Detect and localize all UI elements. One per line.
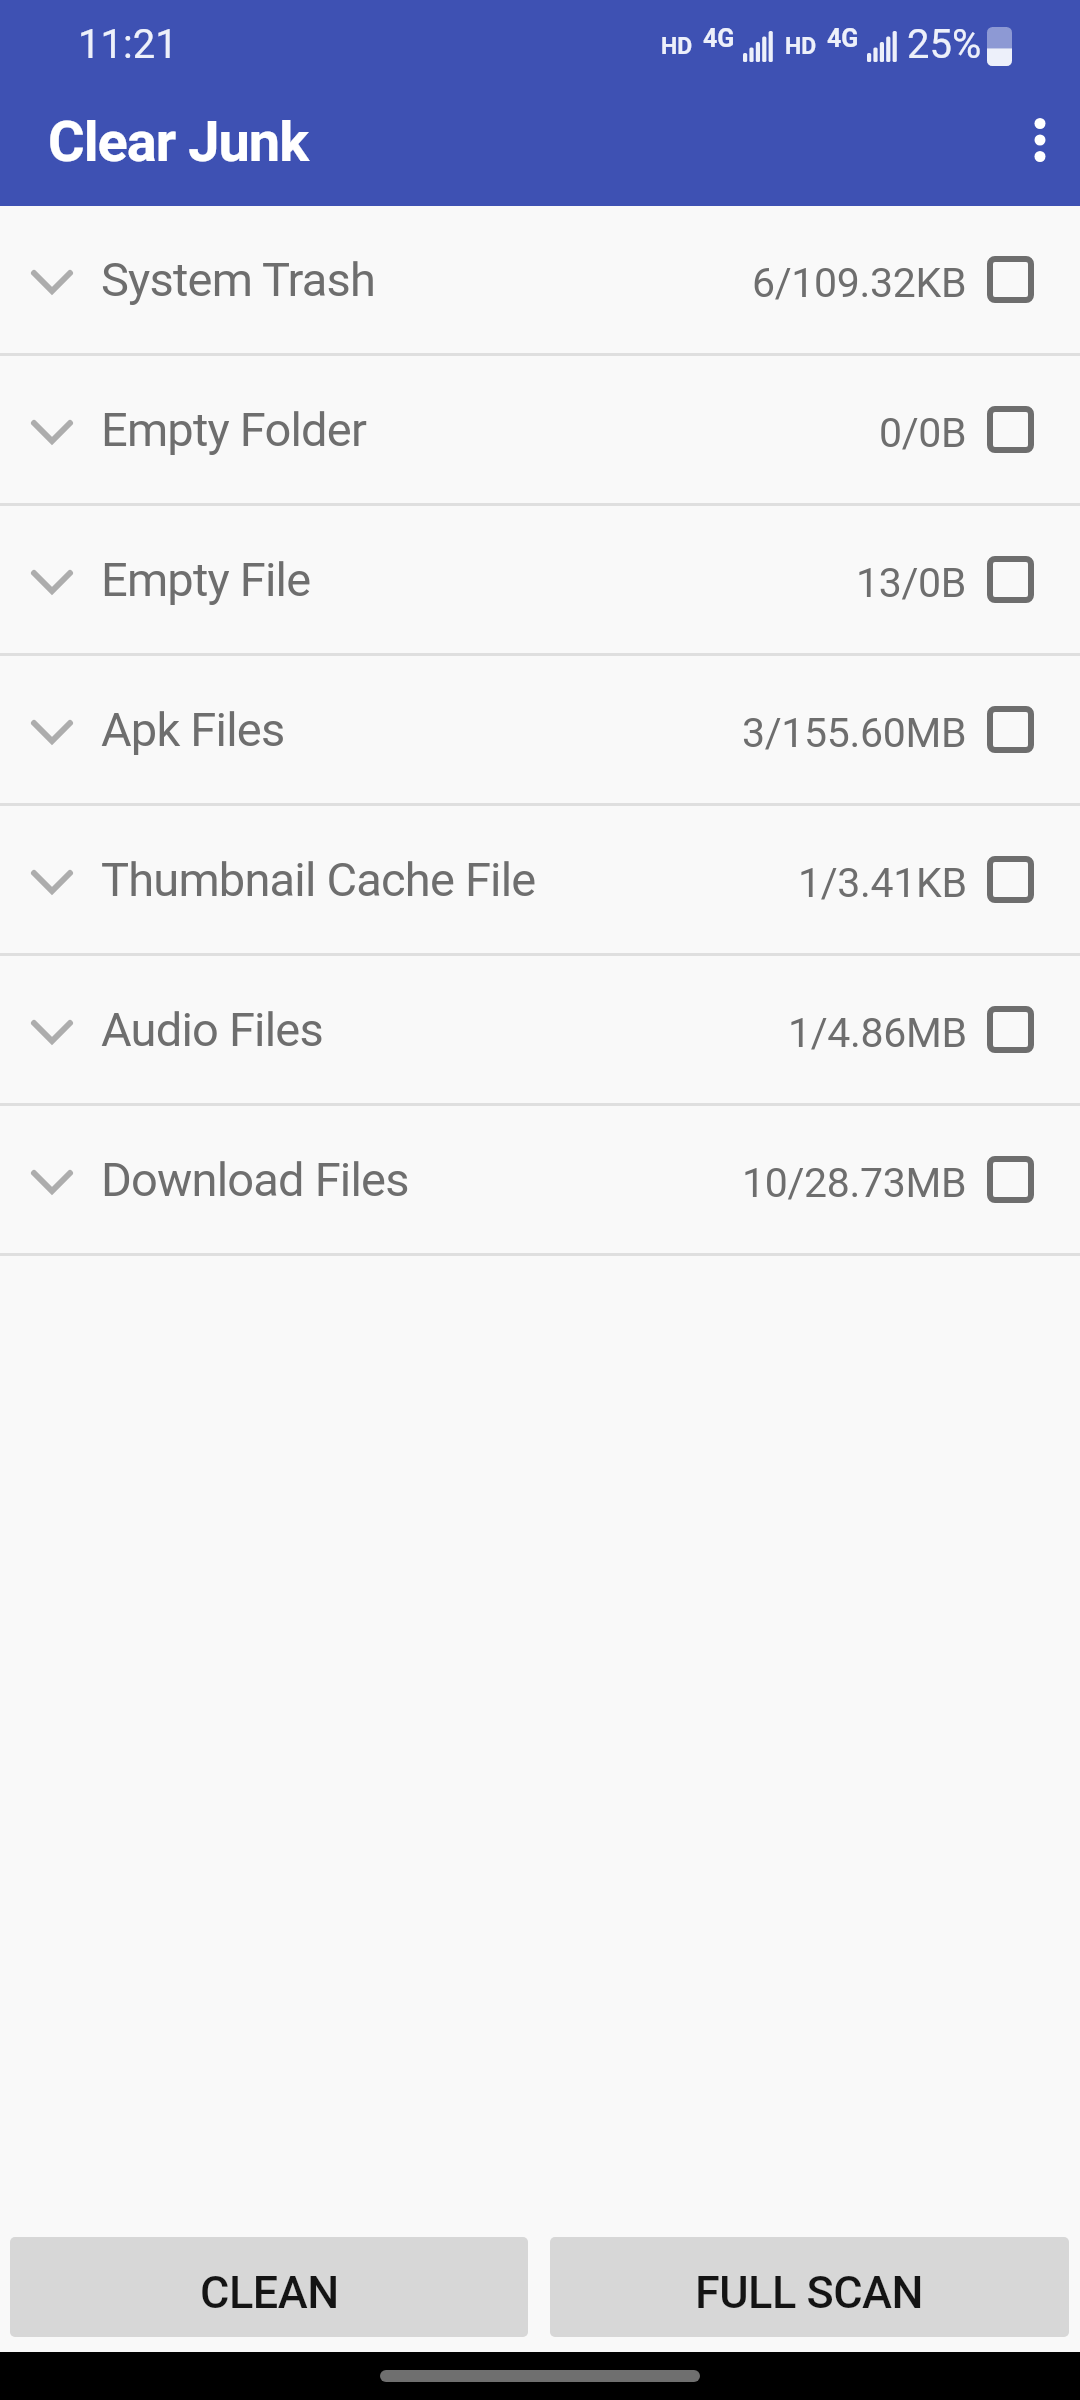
staticText: Empty File bbox=[101, 552, 311, 607]
button[interactable] bbox=[1010, 100, 1050, 190]
button[interactable] bbox=[987, 856, 1034, 903]
button[interactable]: Thumbnail Cache File bbox=[0, 806, 1080, 953]
staticText: 6/109.32KB bbox=[752, 259, 967, 307]
staticText: 4G bbox=[703, 24, 735, 53]
button[interactable]: Empty File bbox=[0, 506, 1080, 653]
button[interactable] bbox=[987, 1006, 1034, 1053]
button[interactable]: FULL SCAN bbox=[550, 2237, 1069, 2337]
button[interactable] bbox=[987, 556, 1034, 603]
staticText: 13/0B bbox=[856, 559, 967, 607]
staticText: Apk Files bbox=[101, 702, 285, 757]
button[interactable] bbox=[987, 256, 1034, 303]
staticText: System Trash bbox=[101, 252, 376, 307]
button[interactable]: Audio Files bbox=[0, 956, 1080, 1103]
staticText: 4G bbox=[827, 24, 859, 53]
button[interactable]: CLEAN bbox=[10, 2237, 528, 2337]
staticText: CLEAN bbox=[200, 2266, 339, 2319]
staticText: Thumbnail Cache File bbox=[101, 852, 536, 907]
staticText: 10/28.73MB bbox=[742, 1159, 967, 1207]
staticText: Clear Junk bbox=[48, 109, 309, 175]
staticText: Empty Folder bbox=[101, 402, 367, 457]
button[interactable] bbox=[987, 406, 1034, 453]
staticText: 11:21 bbox=[78, 21, 178, 68]
button[interactable]: Apk Files bbox=[0, 656, 1080, 803]
button[interactable]: Empty Folder bbox=[0, 356, 1080, 503]
button[interactable] bbox=[987, 1156, 1034, 1203]
button[interactable] bbox=[987, 706, 1034, 753]
staticText: Download Files bbox=[101, 1152, 409, 1207]
staticText: 3/155.60MB bbox=[742, 709, 967, 757]
staticText: Audio Files bbox=[101, 1002, 323, 1057]
staticText: HD bbox=[785, 33, 817, 60]
staticText: 25% bbox=[907, 21, 982, 68]
staticText: HD bbox=[661, 33, 693, 60]
staticText: 1/3.41KB bbox=[798, 859, 967, 907]
staticText: 1/4.86MB bbox=[788, 1009, 967, 1057]
staticText: FULL SCAN bbox=[695, 2266, 924, 2319]
button[interactable]: Download Files bbox=[0, 1106, 1080, 1253]
staticText: 0/0B bbox=[879, 409, 967, 457]
button[interactable]: System Trash bbox=[0, 206, 1080, 353]
